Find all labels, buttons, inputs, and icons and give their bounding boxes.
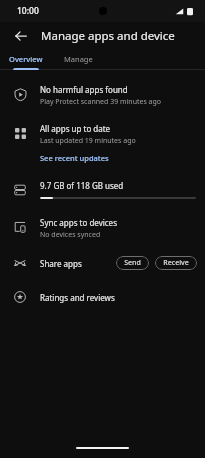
staticText: Share apps [40, 258, 82, 269]
staticText: No devices synced [40, 230, 101, 240]
staticText: Receive [163, 258, 189, 268]
button[interactable]: Manage [52, 49, 104, 68]
staticText: Ratings and reviews [40, 292, 115, 303]
button[interactable]: All apps up to date [0, 115, 205, 171]
staticText: Manage [64, 54, 93, 64]
button[interactable]: Back [10, 25, 32, 47]
button[interactable]: Send [116, 256, 149, 270]
button[interactable]: Overview [0, 49, 52, 68]
staticText: 9.7 GB of 118 GB used [40, 180, 124, 191]
staticText: Sync apps to devices [40, 217, 117, 228]
button[interactable]: No harmful apps found [0, 76, 205, 115]
staticText: Last updated 19 minutes ago [40, 136, 136, 146]
button[interactable]: Sync apps to devices [0, 209, 205, 248]
button[interactable]: See recent updates [40, 153, 109, 163]
button[interactable]: Ratings and reviews [0, 278, 205, 316]
staticText: Play Protect scanned 39 minutes ago [40, 97, 162, 107]
button[interactable]: 9.7 GB of 118 GB used [0, 171, 205, 209]
staticText: No harmful apps found [40, 84, 128, 95]
staticText: Manage apps and device [41, 28, 175, 44]
staticText: Overview [9, 54, 43, 64]
staticText: 10:00 [17, 5, 39, 17]
button[interactable]: Receive [155, 256, 197, 270]
staticText: See recent updates [40, 153, 109, 163]
staticText: Send [124, 258, 141, 268]
staticText: All apps up to date [40, 123, 111, 134]
